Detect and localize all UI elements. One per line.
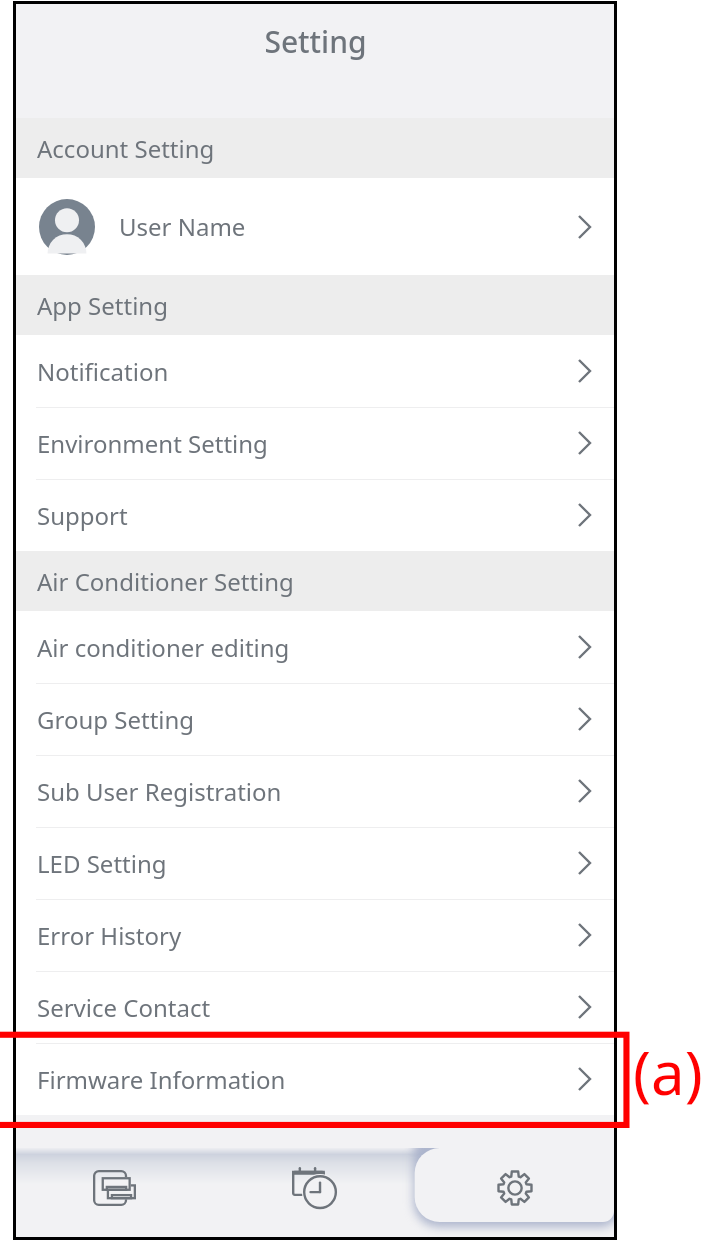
button[interactable]: User Name bbox=[16, 178, 614, 275]
staticText: Air Conditioner Setting bbox=[37, 565, 294, 598]
button[interactable]: Settings bbox=[415, 1148, 614, 1227]
staticText: App Setting bbox=[37, 289, 168, 322]
button[interactable]: LED Setting bbox=[16, 827, 614, 899]
staticText: Sub User Registration bbox=[37, 775, 282, 808]
button[interactable]: Notification bbox=[16, 335, 614, 407]
staticText: Notification bbox=[37, 355, 169, 388]
staticText: Group Setting bbox=[37, 703, 195, 736]
button[interactable]: Air conditioners bbox=[16, 1148, 216, 1227]
staticText: Environment Setting bbox=[37, 427, 268, 460]
button[interactable]: Support bbox=[16, 479, 614, 551]
button[interactable]: Error History bbox=[16, 899, 614, 971]
staticText: LED Setting bbox=[37, 847, 167, 880]
staticText: User Name bbox=[119, 210, 246, 243]
staticText: Firmware Information bbox=[37, 1063, 286, 1096]
button[interactable]: Service Contact bbox=[16, 971, 614, 1043]
staticText: Account Setting bbox=[37, 132, 215, 165]
button[interactable]: Environment Setting bbox=[16, 407, 614, 479]
button[interactable]: Schedule bbox=[216, 1148, 415, 1227]
button[interactable]: Firmware Information bbox=[16, 1043, 614, 1115]
staticText: Support bbox=[37, 499, 128, 532]
staticText: Error History bbox=[37, 919, 182, 952]
button[interactable]: Sub User Registration bbox=[16, 755, 614, 827]
button[interactable]: Air conditioner editing bbox=[16, 611, 614, 683]
staticText: Service Contact bbox=[37, 991, 211, 1024]
staticText: Setting bbox=[264, 21, 367, 62]
staticText: (a) bbox=[633, 1031, 701, 1113]
staticText: Air conditioner editing bbox=[37, 631, 290, 664]
button[interactable]: Group Setting bbox=[16, 683, 614, 755]
